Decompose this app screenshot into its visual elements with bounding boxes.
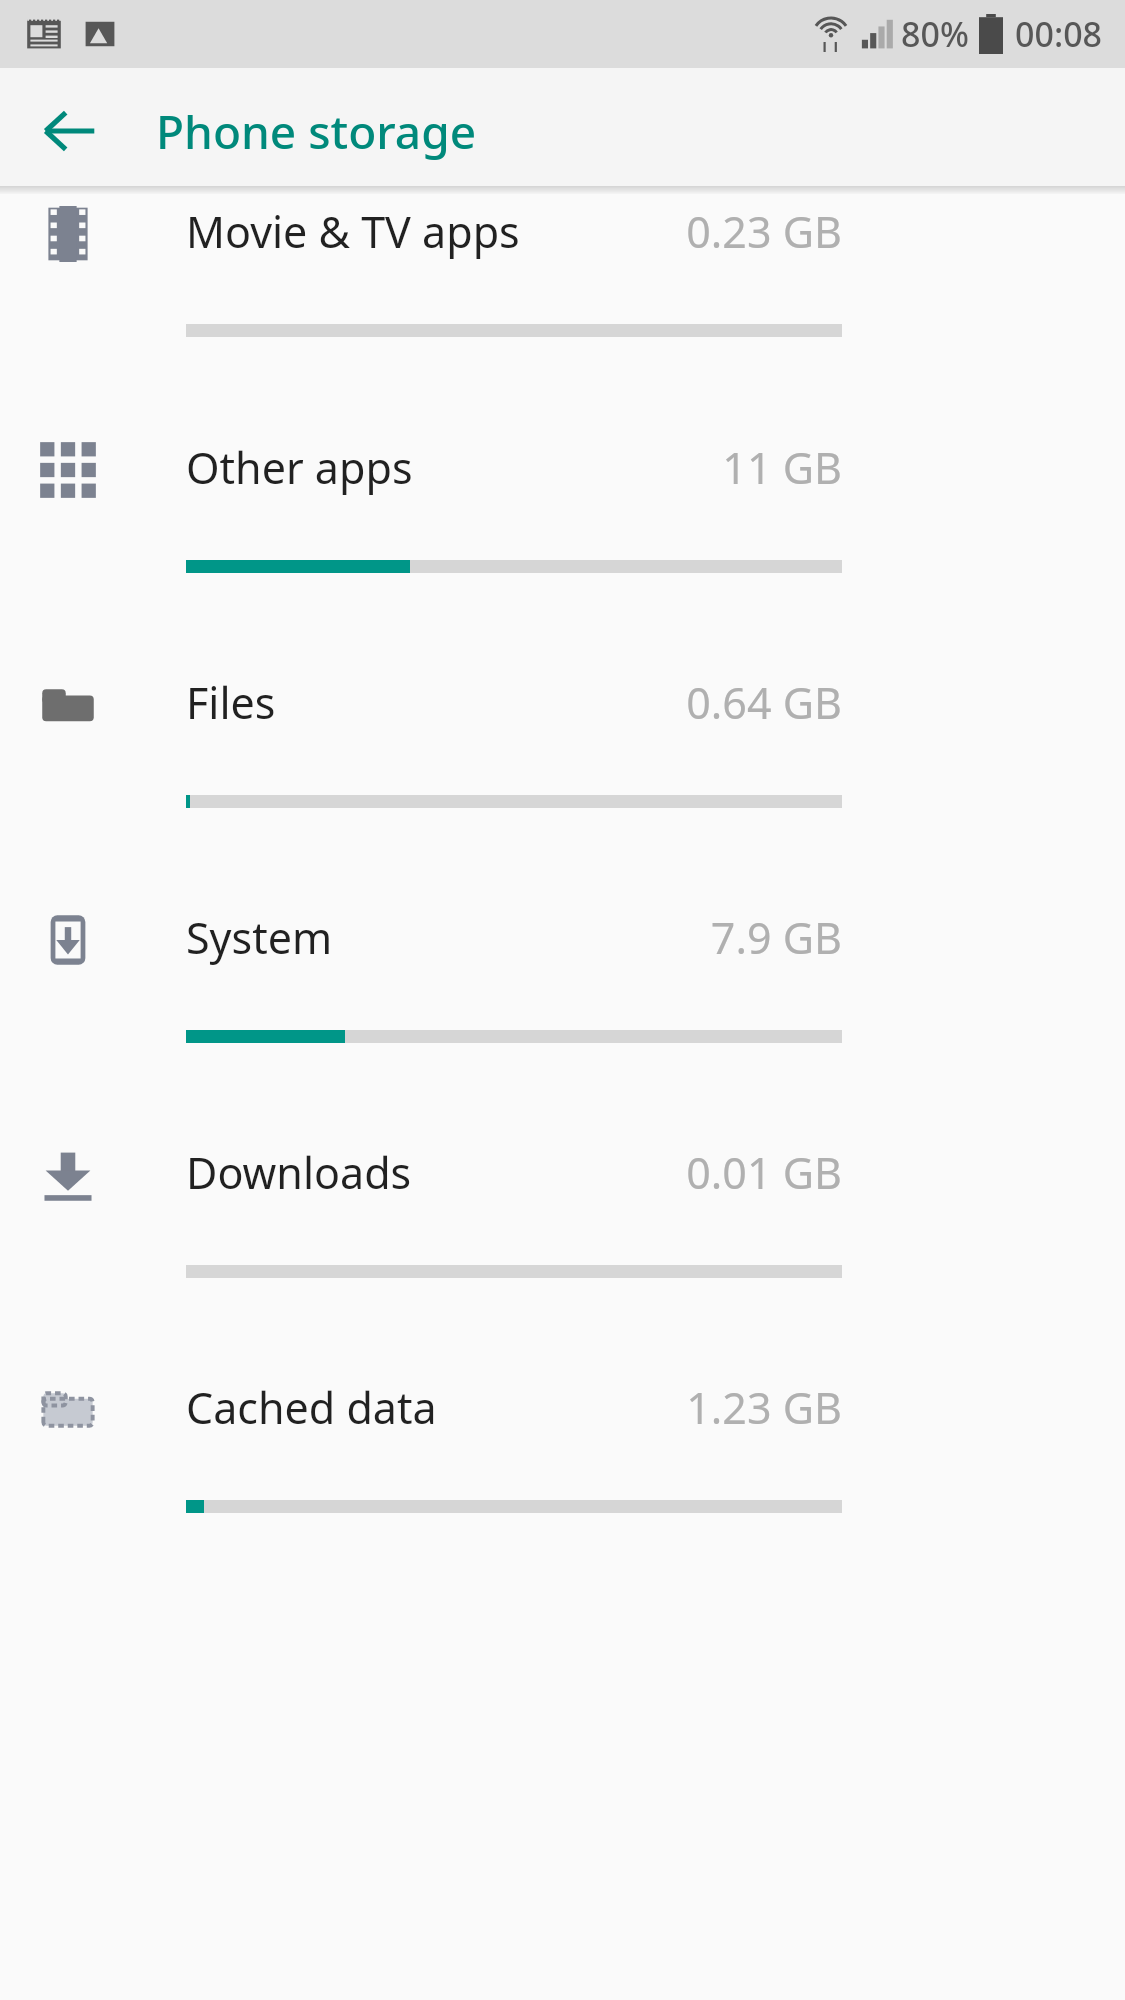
staticText: 7.9 GB xyxy=(710,908,842,967)
staticText: Downloads xyxy=(186,1143,412,1202)
staticText: 80% xyxy=(901,11,969,57)
button[interactable]: Other apps xyxy=(0,402,1125,637)
staticText: 11 GB xyxy=(722,438,842,497)
button[interactable]: Movie & TV apps xyxy=(0,194,1125,402)
staticText: Cached data xyxy=(186,1378,437,1437)
staticText: System xyxy=(186,908,333,967)
button[interactable]: Files xyxy=(0,637,1125,872)
staticText: 00:08 xyxy=(1015,11,1103,57)
button[interactable]: Back xyxy=(26,87,114,175)
button[interactable]: Downloads xyxy=(0,1107,1125,1342)
staticText: Files xyxy=(186,673,276,732)
staticText: Other apps xyxy=(186,438,413,497)
staticText: 0.64 GB xyxy=(686,673,842,732)
staticText: Movie & TV apps xyxy=(186,202,520,261)
button[interactable]: System xyxy=(0,872,1125,1107)
staticText: 0.01 GB xyxy=(686,1143,842,1202)
staticText: Phone storage xyxy=(156,100,477,163)
button[interactable]: Cached data xyxy=(0,1342,1125,1577)
staticText: 1.23 GB xyxy=(686,1378,842,1437)
staticText: 0.23 GB xyxy=(686,202,842,261)
